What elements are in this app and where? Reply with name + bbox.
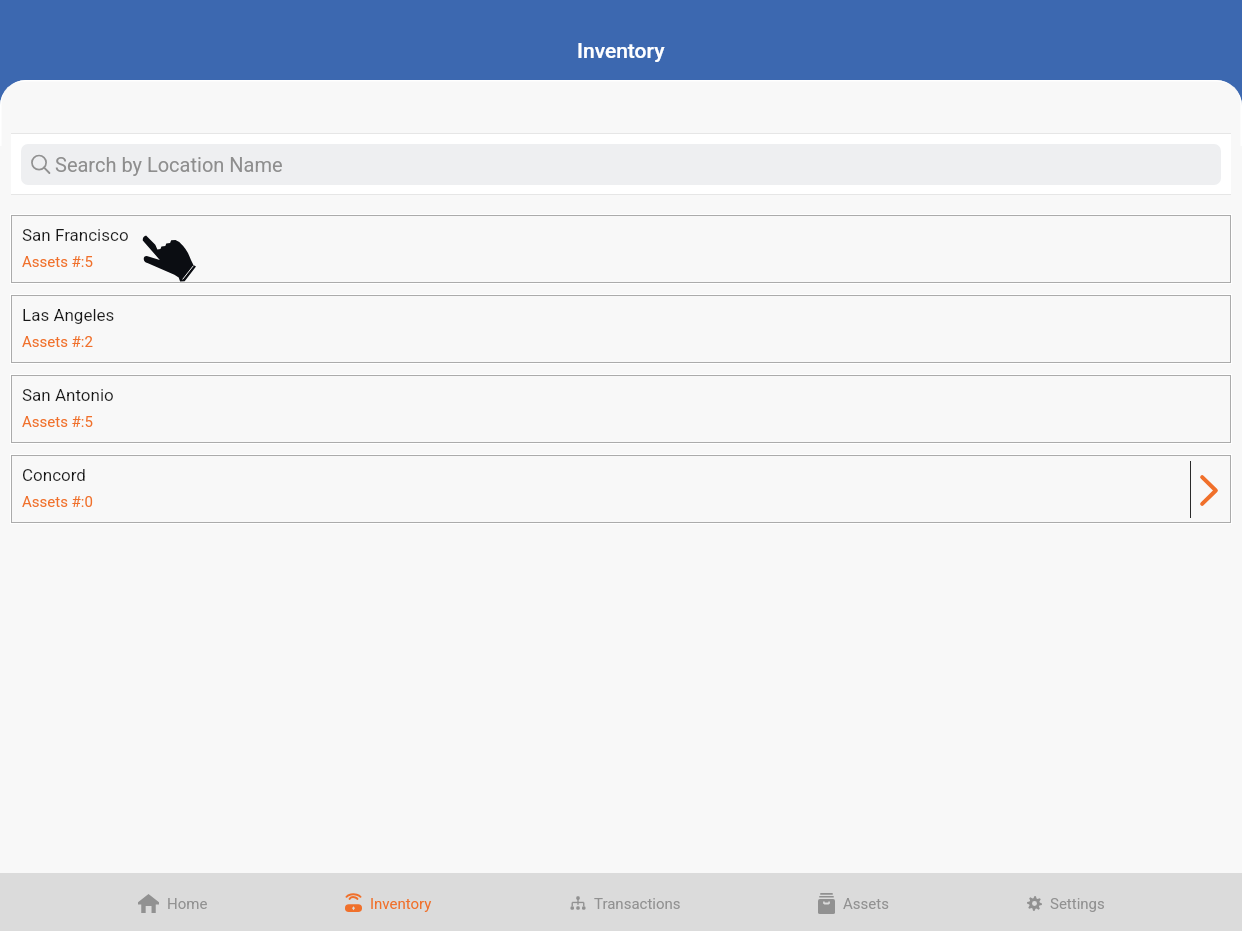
staticText: San Antonio (22, 385, 114, 405)
button[interactable]: Search (21, 144, 1221, 185)
button[interactable]: San Antonio (11, 375, 1231, 443)
staticText: Assets #:5 (22, 253, 93, 271)
other: Search (30, 154, 51, 175)
button[interactable]: San Francisco (11, 215, 1231, 283)
staticText: Assets #:0 (22, 493, 93, 511)
staticText: Concord (22, 465, 86, 485)
staticText: Inventory (370, 895, 432, 913)
staticText: San Francisco (22, 225, 129, 245)
staticText: Las Angeles (22, 305, 115, 325)
staticText: Assets #:2 (22, 333, 93, 351)
button[interactable]: Assets (818, 873, 889, 931)
staticText: Search by Location Name (55, 153, 283, 176)
button[interactable]: Concord (11, 455, 1231, 523)
button[interactable]: Settings (1027, 873, 1105, 931)
staticText: Home (167, 895, 208, 913)
staticText: Inventory (577, 39, 665, 64)
button[interactable]: Open Concord (1191, 455, 1231, 523)
button[interactable]: Home (138, 873, 208, 931)
staticText: Assets #:5 (22, 413, 93, 431)
staticText: Settings (1050, 895, 1105, 913)
staticText: Transactions (594, 895, 681, 913)
button[interactable]: Las Angeles (11, 295, 1231, 363)
staticText: Assets (843, 895, 889, 913)
button[interactable]: Transactions (570, 873, 681, 931)
button[interactable]: Inventory (345, 873, 432, 931)
